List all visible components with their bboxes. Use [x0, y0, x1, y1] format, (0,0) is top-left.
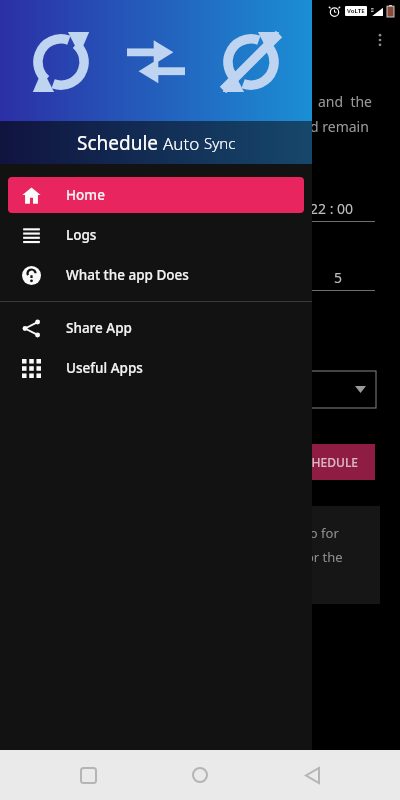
button[interactable]: Home — [8, 177, 304, 213]
staticText: oo for — [302, 524, 339, 542]
staticText: Made by Mstoic — [16, 760, 118, 778]
staticText: Auto — [163, 132, 204, 155]
staticText: Sync — [204, 133, 236, 153]
staticText: and the — [318, 92, 372, 111]
button[interactable]: CHEDULE — [302, 444, 375, 480]
staticText: What the app Does — [66, 266, 189, 284]
staticText: Logs — [66, 226, 97, 244]
staticText: Useful Apps — [66, 359, 143, 377]
button[interactable]: Logs — [8, 217, 304, 253]
button[interactable]: Back — [288, 751, 336, 799]
button[interactable]: Home — [176, 751, 224, 799]
button[interactable]: More options — [366, 26, 394, 54]
staticText: d remain — [310, 117, 369, 136]
staticText: Share App — [66, 319, 132, 337]
staticText: Schedule — [77, 130, 163, 156]
button[interactable] — [300, 371, 376, 408]
staticText: or the — [306, 548, 343, 566]
button[interactable]: Useful Apps — [8, 350, 304, 386]
staticText: Home — [66, 186, 105, 204]
staticText: 5 — [334, 268, 343, 287]
button[interactable]: Share App — [8, 310, 304, 346]
button[interactable]: What the app Does — [8, 257, 304, 293]
staticText: VoLTE — [347, 7, 365, 15]
button[interactable]: Recent apps — [64, 751, 112, 799]
staticText: CHEDULE — [304, 454, 359, 470]
staticText: 22 : 00 — [310, 199, 354, 218]
